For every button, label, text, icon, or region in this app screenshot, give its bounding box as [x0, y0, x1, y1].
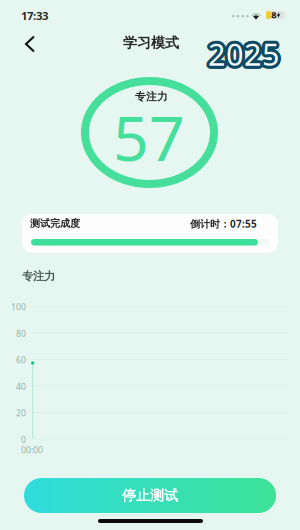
staticText: 8: [271, 8, 276, 21]
staticText: 2025: [209, 36, 281, 78]
staticText: 2025: [206, 31, 278, 73]
button[interactable]: Back: [14, 29, 46, 59]
staticText: 17:33: [21, 8, 48, 23]
staticText: 2025: [208, 30, 280, 72]
staticText: 2025: [211, 33, 283, 75]
staticText: 2025: [205, 34, 277, 76]
staticText: 2025: [208, 33, 280, 75]
staticText: 2025: [210, 35, 282, 77]
staticText: 停止测试: [122, 487, 178, 504]
staticText: 60: [16, 354, 26, 366]
staticText: 2025: [205, 33, 277, 75]
staticText: 2025: [209, 30, 281, 72]
staticText: 80: [16, 327, 26, 339]
staticText: 专注力: [135, 90, 168, 103]
staticText: 2025: [208, 36, 280, 78]
staticText: 00:00: [21, 444, 43, 456]
staticText: 40: [16, 380, 26, 392]
staticText: 20: [16, 407, 26, 419]
staticText: 2025: [206, 35, 278, 77]
staticText: 100: [11, 301, 26, 313]
staticText: 专注力: [22, 269, 55, 283]
staticText: 2025: [207, 30, 279, 72]
staticText: 2025: [211, 32, 283, 74]
staticText: 2025: [210, 31, 282, 73]
staticText: 2025: [211, 34, 283, 76]
staticText: 倒计时：07:55: [190, 217, 257, 231]
staticText: 2025: [205, 32, 277, 74]
staticText: 2025: [207, 36, 279, 78]
staticText: 57: [113, 94, 185, 179]
staticText: 0: [21, 433, 26, 445]
staticText: 学习模式: [123, 34, 179, 52]
staticText: 测试完成度: [30, 217, 80, 230]
button[interactable]: 停止测试: [24, 478, 276, 513]
